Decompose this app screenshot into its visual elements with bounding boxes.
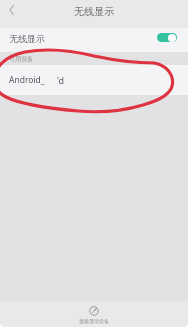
staticText: 可用设备 (9, 55, 33, 63)
staticText: 无线显示 (9, 33, 45, 44)
button[interactable]: Android_ (0, 65, 188, 95)
staticText: 搜索显示设备 (79, 318, 109, 324)
staticText: 无线显示 (74, 5, 114, 18)
button[interactable]: 无线显示 (0, 28, 188, 52)
button[interactable]: 搜索显示设备 (0, 302, 188, 327)
staticText: Android_ (9, 74, 45, 86)
button[interactable]: Back (2, 0, 22, 20)
staticText: 'd (57, 74, 65, 86)
